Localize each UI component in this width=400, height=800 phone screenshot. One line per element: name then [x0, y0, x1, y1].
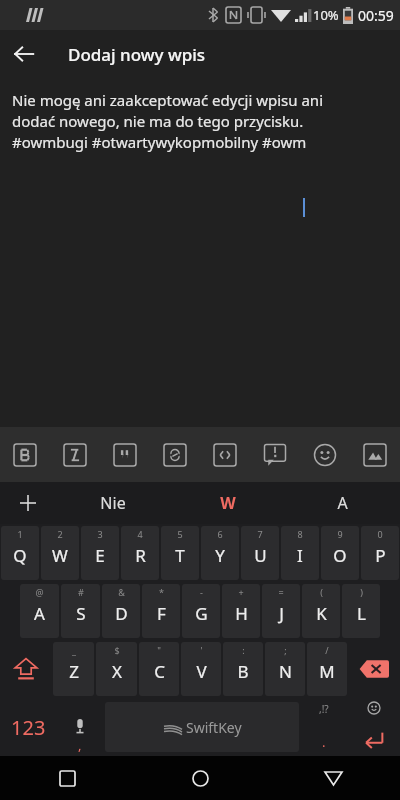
staticText: $: [114, 644, 120, 656]
button[interactable]: A: [285, 482, 400, 524]
staticText: -: [200, 586, 203, 598]
staticText: .: [322, 733, 326, 751]
button[interactable]: #: [61, 584, 100, 638]
button[interactable]: :: [223, 642, 263, 696]
button[interactable]: Backspace: [350, 642, 398, 696]
staticText: Nie: [100, 492, 126, 514]
staticText: X: [112, 660, 122, 683]
staticText: 2: [57, 528, 63, 540]
button[interactable]: 4: [121, 526, 159, 580]
staticText: F: [157, 602, 166, 625]
button[interactable]: Link: [150, 427, 200, 482]
button[interactable]: ": [139, 642, 179, 696]
button[interactable]: 123: [0, 698, 56, 756]
staticText: Nie mogę ani zaakceptować edycji wpisu a…: [12, 90, 324, 132]
button[interactable]: 7: [241, 526, 279, 580]
button[interactable]: *: [142, 584, 180, 638]
button[interactable]: 3: [81, 526, 119, 580]
button[interactable]: 1: [1, 526, 39, 580]
staticText: L: [357, 602, 366, 625]
button[interactable]: ;: [265, 642, 305, 696]
staticText: =: [278, 586, 284, 598]
button[interactable]: Enter: [348, 698, 400, 756]
button[interactable]: =: [262, 584, 300, 638]
staticText: W: [52, 544, 68, 567]
staticText: O: [333, 544, 347, 567]
button[interactable]: &: [102, 584, 140, 638]
staticText: H: [235, 602, 248, 625]
staticText: 8: [297, 528, 303, 540]
button[interactable]: Bold: [0, 427, 50, 482]
button[interactable]: Image: [350, 427, 400, 482]
staticText: #: [78, 586, 84, 598]
button[interactable]: 2: [41, 526, 79, 580]
staticText: +: [238, 586, 244, 598]
staticText: B: [237, 660, 249, 683]
button[interactable]: Code: [200, 427, 250, 482]
staticText: ,!?: [319, 702, 329, 716]
button[interactable]: _: [53, 642, 94, 696]
staticText: C: [154, 660, 165, 683]
button[interactable]: Emoji: [300, 427, 350, 482]
staticText: A: [34, 602, 45, 625]
staticText: K: [316, 602, 327, 625]
button[interactable]: Home: [134, 756, 267, 800]
staticText: 6: [217, 528, 223, 540]
button[interactable]: W: [170, 482, 285, 524]
staticText: ;: [284, 644, 287, 656]
button[interactable]: ): [342, 584, 380, 638]
button[interactable]: +: [222, 584, 260, 638]
staticText: #owmbugi #otwartywykopmobilny #owm: [12, 132, 307, 152]
button[interactable]: Recents: [0, 756, 134, 800]
button[interactable]: 5: [161, 526, 199, 580]
staticText: &: [118, 586, 125, 598]
button[interactable]: Hide keyboard: [267, 756, 400, 800]
staticText: 9: [337, 528, 343, 540]
staticText: 1: [17, 528, 23, 540]
staticText: 3: [97, 528, 103, 540]
staticText: D: [115, 602, 128, 625]
button[interactable]: Spoiler: [250, 427, 300, 482]
staticText: G: [195, 602, 208, 625]
button[interactable]: /: [307, 642, 347, 696]
button[interactable]: Nie: [56, 482, 170, 524]
staticText: R: [135, 544, 146, 567]
button[interactable]: ,!?: [300, 698, 348, 756]
staticText: 5: [177, 528, 183, 540]
button[interactable]: -: [182, 584, 220, 638]
button[interactable]: Italic: [50, 427, 100, 482]
staticText: 4: [137, 528, 143, 540]
staticText: *: [159, 586, 164, 598]
staticText: Dodaj nowy wpis: [68, 43, 206, 66]
button[interactable]: Shift: [2, 642, 50, 696]
button[interactable]: 8: [281, 526, 319, 580]
staticText: ,: [78, 736, 82, 754]
staticText: P: [375, 544, 386, 567]
button[interactable]: (: [302, 584, 340, 638]
button[interactable]: 6: [201, 526, 239, 580]
staticText: Q: [13, 544, 27, 567]
staticText: (: [320, 586, 323, 598]
staticText: Y: [215, 544, 225, 567]
button[interactable]: Voice input: [56, 698, 104, 756]
staticText: M: [319, 660, 335, 683]
button[interactable]: @: [20, 584, 59, 638]
staticText: A: [337, 492, 348, 514]
button[interactable]: ': [181, 642, 221, 696]
staticText: ": [157, 644, 161, 656]
staticText: V: [196, 660, 207, 683]
staticText: U: [254, 544, 267, 567]
button[interactable]: $: [96, 642, 137, 696]
button[interactable]: Back: [0, 30, 48, 78]
button[interactable]: 9: [321, 526, 359, 580]
staticText: SwiftKey: [186, 718, 242, 737]
button[interactable]: Quote: [100, 427, 150, 482]
staticText: ): [360, 586, 363, 598]
staticText: 7: [257, 528, 263, 540]
button[interactable]: Space: [105, 702, 299, 752]
staticText: I: [297, 544, 303, 567]
staticText: :: [242, 644, 245, 656]
staticText: @: [35, 586, 44, 598]
button[interactable]: 0: [361, 526, 399, 580]
button[interactable]: Add: [0, 482, 56, 524]
